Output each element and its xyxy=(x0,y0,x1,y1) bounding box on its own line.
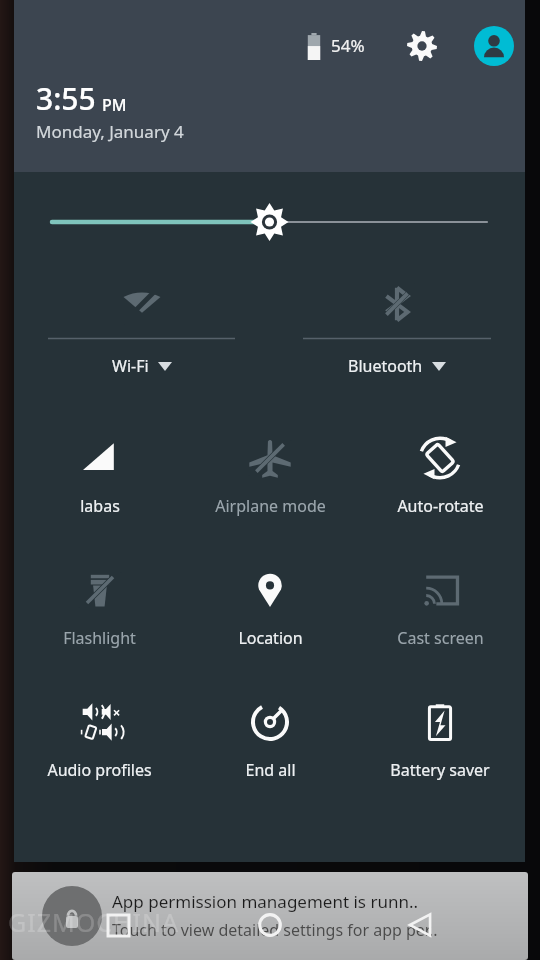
staticText: Touch to view detailed settings for app … xyxy=(112,919,438,941)
staticText: PM xyxy=(102,94,127,116)
button[interactable]: End all xyxy=(185,691,355,781)
button[interactable]: 54% xyxy=(304,26,365,64)
button[interactable]: Settings xyxy=(400,24,444,68)
staticText: Cast screen xyxy=(397,627,484,649)
staticText: Monday, January 4 xyxy=(36,120,184,143)
button[interactable]: Flashlight xyxy=(14,559,185,649)
button[interactable]: labas xyxy=(14,427,185,517)
button[interactable]: Back xyxy=(398,903,442,947)
button[interactable]: Airplane mode xyxy=(185,427,355,517)
button[interactable]: App permission management is runn.. xyxy=(12,872,528,960)
button[interactable]: Bluetooth xyxy=(269,274,525,377)
button[interactable] xyxy=(14,200,525,244)
staticText: Auto-rotate xyxy=(397,495,484,517)
staticText: Flashlight xyxy=(63,627,136,649)
staticText: 3:55 xyxy=(36,78,96,119)
button[interactable]: Home xyxy=(248,903,292,947)
button[interactable]: Recents xyxy=(96,903,140,947)
button[interactable]: Location xyxy=(185,559,355,649)
staticText: Location xyxy=(238,627,303,649)
button[interactable]: Battery saver xyxy=(355,691,525,781)
staticText: App permission management is runn.. xyxy=(112,890,419,913)
button[interactable]: Auto-rotate xyxy=(355,427,525,517)
staticText: End all xyxy=(245,759,296,781)
staticText: 54% xyxy=(331,34,365,57)
staticText: Audio profiles xyxy=(47,759,152,781)
staticText: Battery saver xyxy=(390,759,490,781)
staticText: labas xyxy=(80,495,120,517)
staticText: GIZMOCHINA xyxy=(8,905,179,939)
button[interactable]: Wi-Fi xyxy=(14,274,269,377)
staticText: Airplane mode xyxy=(215,495,326,517)
button[interactable]: Cast screen xyxy=(355,559,525,649)
staticText: Bluetooth xyxy=(348,355,423,377)
button[interactable]: User xyxy=(472,24,516,68)
button[interactable]: Audio profiles xyxy=(14,691,185,781)
staticText: Wi-Fi xyxy=(112,355,149,377)
